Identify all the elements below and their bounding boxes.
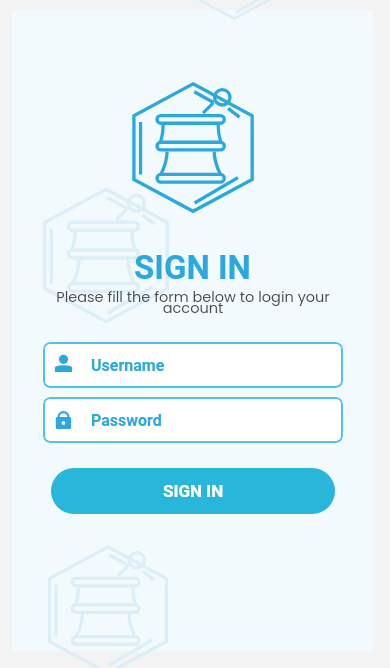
staticText: Password [91, 411, 162, 430]
staticText: SIGN IN [163, 481, 224, 501]
button[interactable]: SIGN IN [51, 468, 335, 514]
staticText: SIGN IN [134, 248, 251, 287]
button[interactable]: Password [43, 397, 343, 443]
staticText: Username [91, 356, 165, 375]
button[interactable]: Username [43, 342, 343, 388]
staticText: Please fill the form below to login your… [48, 287, 338, 318]
